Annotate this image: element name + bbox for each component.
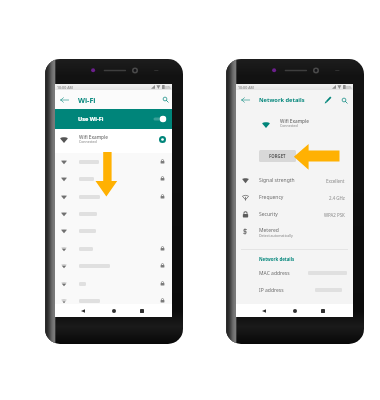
button[interactable]: Metered <box>236 222 353 242</box>
staticText: Connected <box>79 139 97 144</box>
staticText: WPA2 PSK <box>324 212 345 218</box>
button[interactable]: Recents <box>135 304 148 317</box>
button[interactable]: Search <box>158 90 172 109</box>
button[interactable] <box>55 170 172 187</box>
button[interactable] <box>55 257 172 274</box>
button[interactable]: Back <box>257 304 270 317</box>
staticText: Connected <box>280 123 298 128</box>
staticText: Wifi Example <box>280 118 309 124</box>
button[interactable] <box>55 240 172 257</box>
staticText: Excellent <box>326 178 345 184</box>
button[interactable] <box>55 222 172 239</box>
staticText: Detect automatically <box>259 233 293 238</box>
staticText: Use Wi-Fi <box>78 115 104 123</box>
staticText: MAC address <box>259 270 290 277</box>
button[interactable]: Wifi Example <box>55 129 172 153</box>
button[interactable]: Search <box>337 90 351 110</box>
staticText: Network details <box>259 96 305 104</box>
button[interactable] <box>55 292 172 309</box>
button[interactable]: Edit <box>321 90 335 110</box>
button[interactable]: Back <box>76 304 89 317</box>
button[interactable]: Signal strength <box>236 172 353 189</box>
staticText: 2.4 GHz <box>329 195 345 201</box>
staticText: IP address <box>259 287 284 294</box>
staticText: Security <box>259 211 278 218</box>
button[interactable]: Home <box>107 304 120 317</box>
staticText: 100% <box>343 85 352 90</box>
button[interactable]: IP address <box>236 282 353 298</box>
staticText: Signal strength <box>259 177 295 184</box>
button[interactable]: Home <box>288 304 301 317</box>
staticText: 10:00 AM <box>238 85 254 90</box>
button[interactable]: Recents <box>316 304 329 317</box>
button[interactable]: FORGET <box>259 150 296 162</box>
staticText: 10:00 AM <box>57 85 73 90</box>
staticText: Wifi Example <box>79 134 108 140</box>
staticText: FORGET <box>269 153 286 159</box>
button[interactable] <box>55 153 172 170</box>
button[interactable] <box>55 188 172 205</box>
staticText: Network details <box>259 256 295 262</box>
button[interactable]: MAC address <box>236 265 353 281</box>
button[interactable] <box>55 275 172 292</box>
staticText: Metered <box>259 227 279 234</box>
staticText: 100% <box>162 85 171 90</box>
button[interactable]: Back <box>238 90 253 110</box>
button[interactable]: Wifi Example <box>236 112 353 137</box>
staticText: Frequency <box>259 194 284 201</box>
button[interactable]: Frequency <box>236 189 353 206</box>
button[interactable]: Security <box>236 206 353 223</box>
staticText: Wi-Fi <box>78 95 96 105</box>
button[interactable]: Back <box>57 90 71 109</box>
button[interactable] <box>55 205 172 222</box>
button[interactable]: Use Wi-Fi <box>55 109 172 129</box>
